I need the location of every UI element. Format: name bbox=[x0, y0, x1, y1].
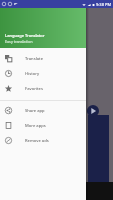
button[interactable]: Share app bbox=[0, 103, 86, 118]
staticText: Remove ads bbox=[25, 138, 49, 144]
button[interactable]: Translate bbox=[0, 51, 86, 66]
staticText: 9:38 PM bbox=[96, 2, 112, 7]
button[interactable]: Play bbox=[87, 105, 99, 117]
staticText: Easy translation bbox=[5, 39, 33, 44]
staticText: Share app bbox=[25, 108, 45, 114]
button[interactable]: More apps bbox=[0, 118, 86, 133]
button[interactable]: Favorites bbox=[0, 81, 86, 96]
button[interactable]: History bbox=[0, 66, 86, 81]
staticText: History bbox=[25, 71, 40, 77]
staticText: Translate bbox=[25, 56, 44, 62]
button[interactable]: Remove ads bbox=[0, 133, 86, 148]
staticText: Language Translator bbox=[5, 33, 45, 38]
staticText: More apps bbox=[25, 123, 46, 129]
staticText: Favorites bbox=[25, 86, 43, 92]
